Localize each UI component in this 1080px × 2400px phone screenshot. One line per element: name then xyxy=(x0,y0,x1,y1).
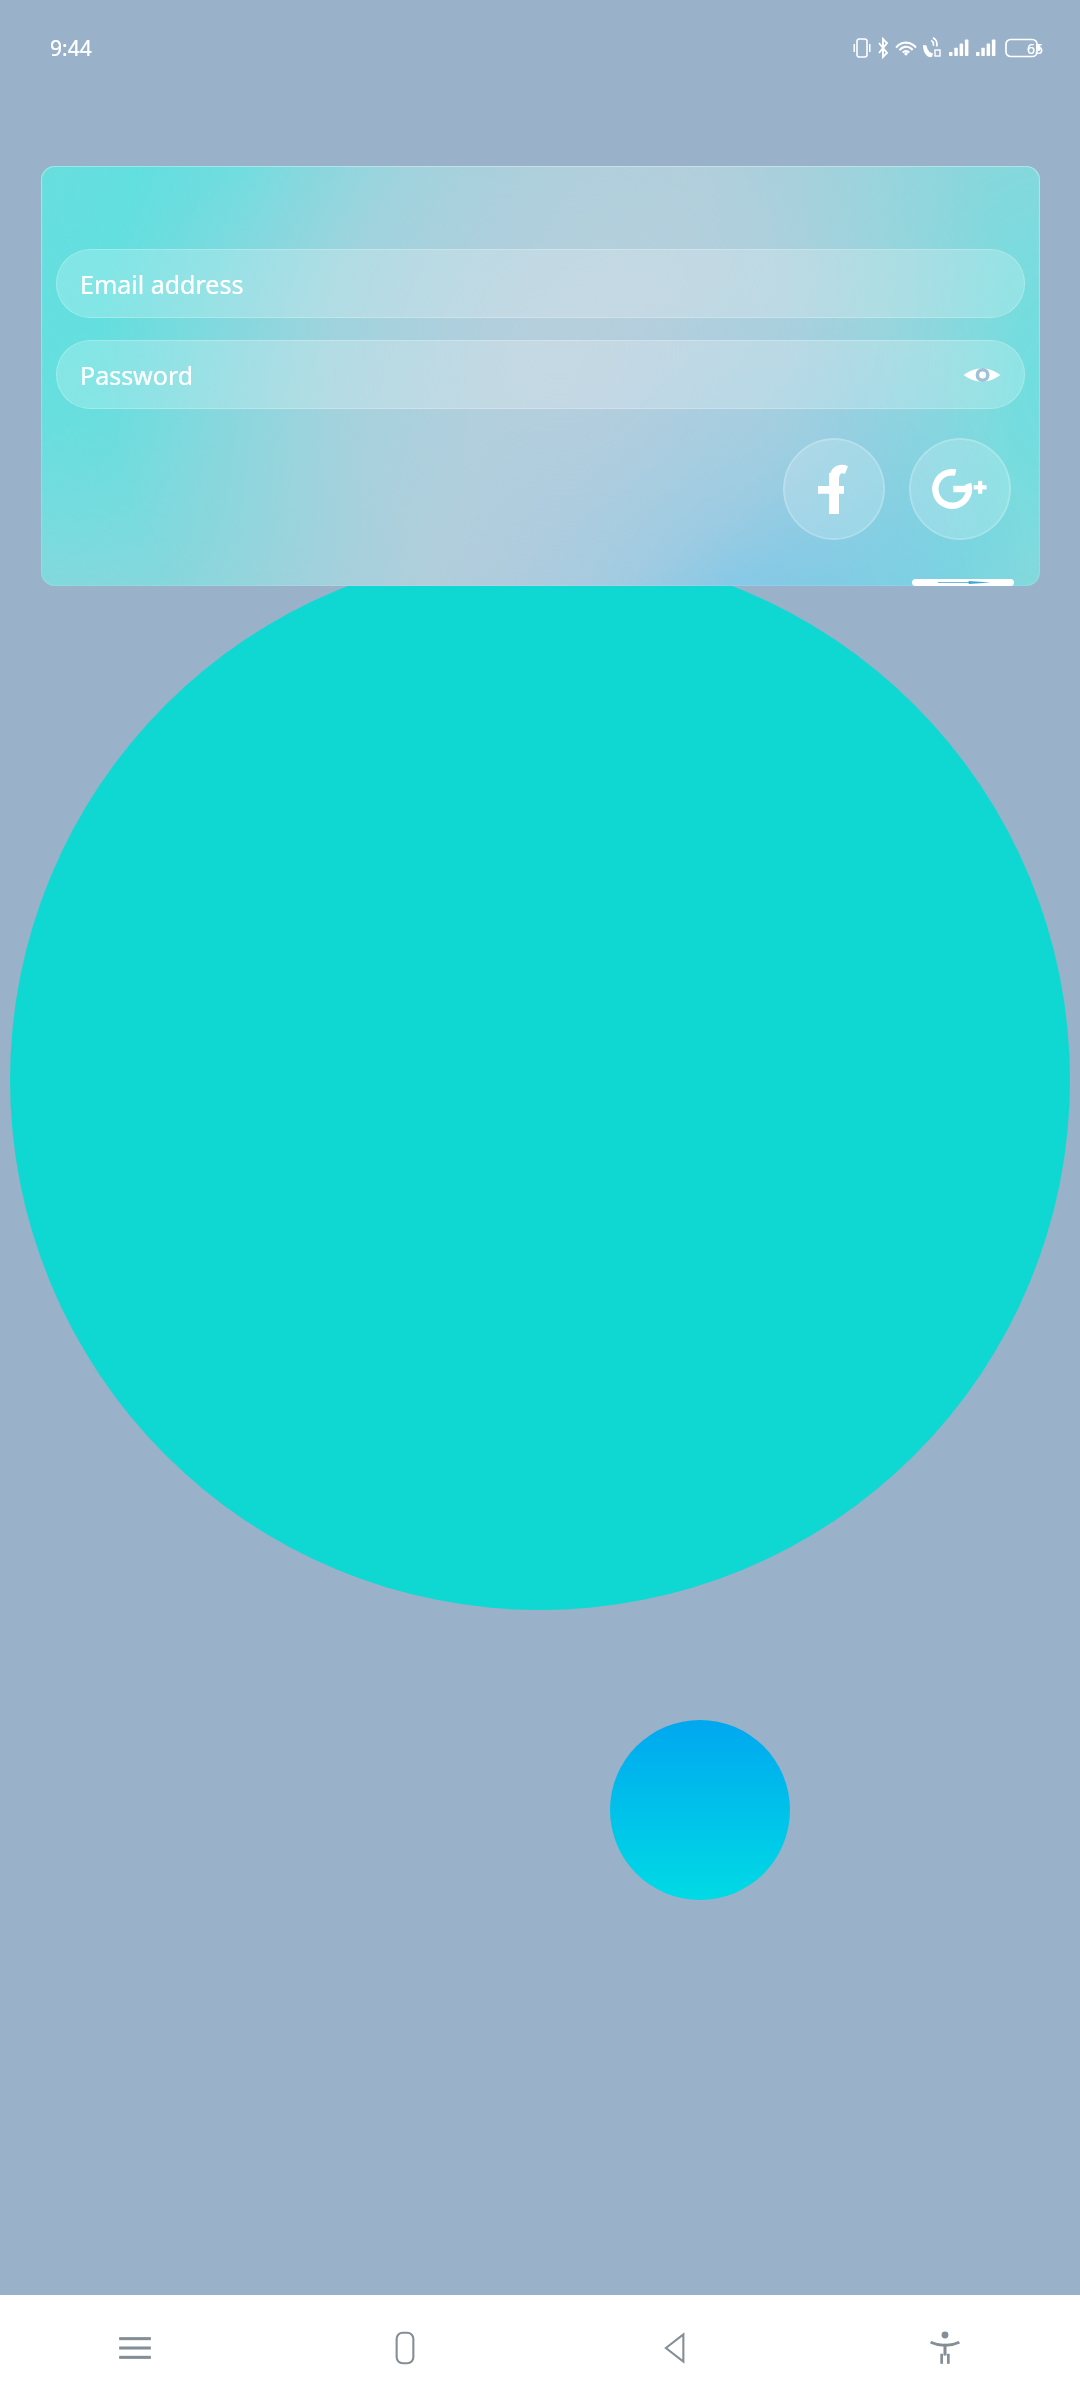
button[interactable]: Home xyxy=(270,2295,540,2400)
button[interactable]: Sign in with Facebook xyxy=(783,438,885,540)
staticText: Email address xyxy=(80,267,244,301)
staticText: Password xyxy=(80,358,194,392)
button[interactable]: Sign in xyxy=(912,579,1014,586)
button[interactable]: Recent apps xyxy=(0,2295,270,2400)
button[interactable]: Password xyxy=(56,340,1025,409)
button[interactable]: Back xyxy=(540,2295,810,2400)
staticText: Sign in xyxy=(69,579,196,586)
button[interactable]: Sign in with Google xyxy=(909,438,1011,540)
staticText: Welcome xyxy=(426,152,654,220)
staticText: 9:44 xyxy=(50,34,92,63)
button[interactable]: Accessibility xyxy=(810,2295,1080,2400)
button[interactable]: Show password xyxy=(959,352,1005,398)
button[interactable]: Email address xyxy=(56,249,1025,318)
staticText: 65 xyxy=(1027,39,1044,58)
